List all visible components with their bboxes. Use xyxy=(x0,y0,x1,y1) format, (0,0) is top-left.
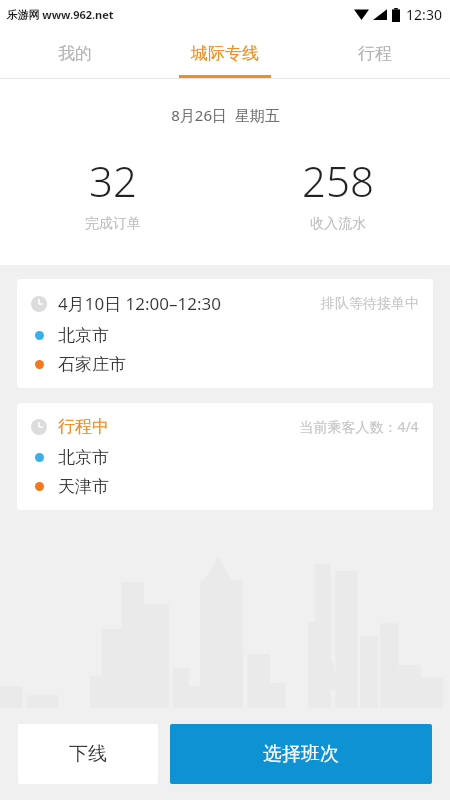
staticText: 北京市 xyxy=(58,325,109,346)
staticText: 完成订单 xyxy=(85,215,141,233)
staticText: 我的 xyxy=(58,43,92,64)
button[interactable]: 选择班次 xyxy=(170,724,432,784)
staticText: 行程 xyxy=(358,43,392,64)
staticText: 8月26日 星期五 xyxy=(171,105,280,125)
button[interactable]: 行程中 xyxy=(17,403,433,510)
staticText: 32 xyxy=(89,152,137,209)
staticText: 选择班次 xyxy=(263,742,339,766)
staticText: 乐游网 www.962.net xyxy=(6,7,114,22)
staticText: 石家庄市 xyxy=(58,354,126,375)
button[interactable]: 下线 xyxy=(18,724,158,784)
staticText: 当前乘客人数：4/4 xyxy=(299,417,419,436)
staticText: 城际专线 xyxy=(191,43,259,64)
button[interactable]: 我的 xyxy=(0,28,150,78)
button[interactable]: 行程 xyxy=(300,28,450,78)
staticText: 天津市 xyxy=(58,476,109,497)
staticText: 排队等待接单中 xyxy=(321,295,419,313)
staticText: 4月10日 12:00–12:30 xyxy=(58,292,221,315)
staticText: 北京市 xyxy=(58,447,109,468)
staticText: 行程中 xyxy=(58,416,109,437)
staticText: 258 xyxy=(302,152,374,209)
staticText: 12:30 xyxy=(406,5,442,24)
button[interactable]: 4月10日 12:00–12:30 xyxy=(17,279,433,388)
staticText: 收入流水 xyxy=(310,215,366,233)
button[interactable]: 城际专线 xyxy=(150,28,300,78)
staticText: 下线 xyxy=(69,742,107,766)
